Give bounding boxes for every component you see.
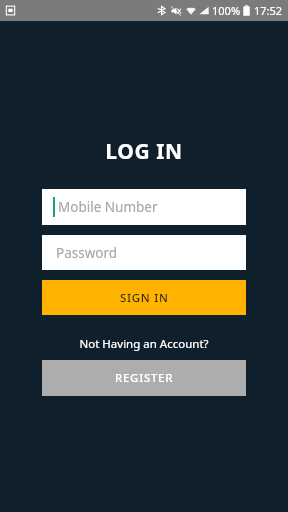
staticText: Mobile Number [58, 198, 158, 216]
button[interactable]: SIGN IN [42, 280, 246, 315]
staticText: LOG IN [0, 137, 288, 166]
button[interactable]: Password [42, 235, 246, 270]
button[interactable]: REGISTER [42, 360, 246, 396]
staticText: SIGN IN [120, 290, 169, 306]
staticText: 100% [212, 3, 241, 18]
button[interactable]: Mobile Number [42, 189, 246, 225]
staticText: 17:52 [254, 3, 283, 18]
staticText: Password [56, 244, 118, 262]
staticText: Not Having an Account? [0, 336, 288, 352]
other: Screenshot [5, 5, 16, 16]
staticText: REGISTER [115, 370, 174, 386]
